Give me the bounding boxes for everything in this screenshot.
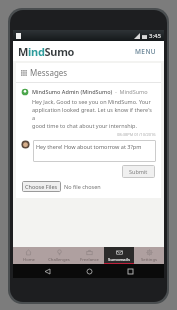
staticText: 3:45 <box>149 32 161 40</box>
button[interactable]: Settings <box>134 247 164 264</box>
button[interactable]: Recent apps <box>123 264 137 278</box>
button[interactable]: Home <box>13 247 44 264</box>
staticText: Freelance <box>80 257 99 263</box>
staticText: No file chosen <box>64 183 101 190</box>
staticText: 08:38PM 01/10/2016 <box>117 132 156 137</box>
staticText: Hey Jack, Good to see you on MindSumo. Y… <box>32 98 156 130</box>
staticText: Settings <box>141 257 157 263</box>
staticText: Messages <box>30 67 68 78</box>
button[interactable]: Hey there! How about tomorrow at 3?pm <box>33 140 156 162</box>
button[interactable]: Home <box>82 264 96 278</box>
button[interactable]: Challenges <box>44 247 74 264</box>
button[interactable]: MENU <box>133 45 159 58</box>
staticText: Choose Files <box>25 183 58 190</box>
staticText: MindSumo <box>18 44 75 59</box>
button[interactable]: Sumomails <box>104 247 134 264</box>
button[interactable]: MindSumo <box>18 44 75 59</box>
staticText: MindSumo Admin (MindSumo) · MindSumo <box>32 88 148 95</box>
button[interactable]: Freelance <box>74 247 104 264</box>
button[interactable]: Submit <box>122 165 155 178</box>
button[interactable]: Back <box>40 264 54 278</box>
staticText: Submit <box>129 168 148 175</box>
staticText: MENU <box>135 47 157 56</box>
staticText: Challenges <box>48 257 70 263</box>
button[interactable]: Choose Files <box>22 181 61 192</box>
staticText: Sumomails <box>108 257 130 263</box>
staticText: Hey there! How about tomorrow at 3?pm <box>36 143 142 150</box>
staticText: Home <box>23 257 35 263</box>
